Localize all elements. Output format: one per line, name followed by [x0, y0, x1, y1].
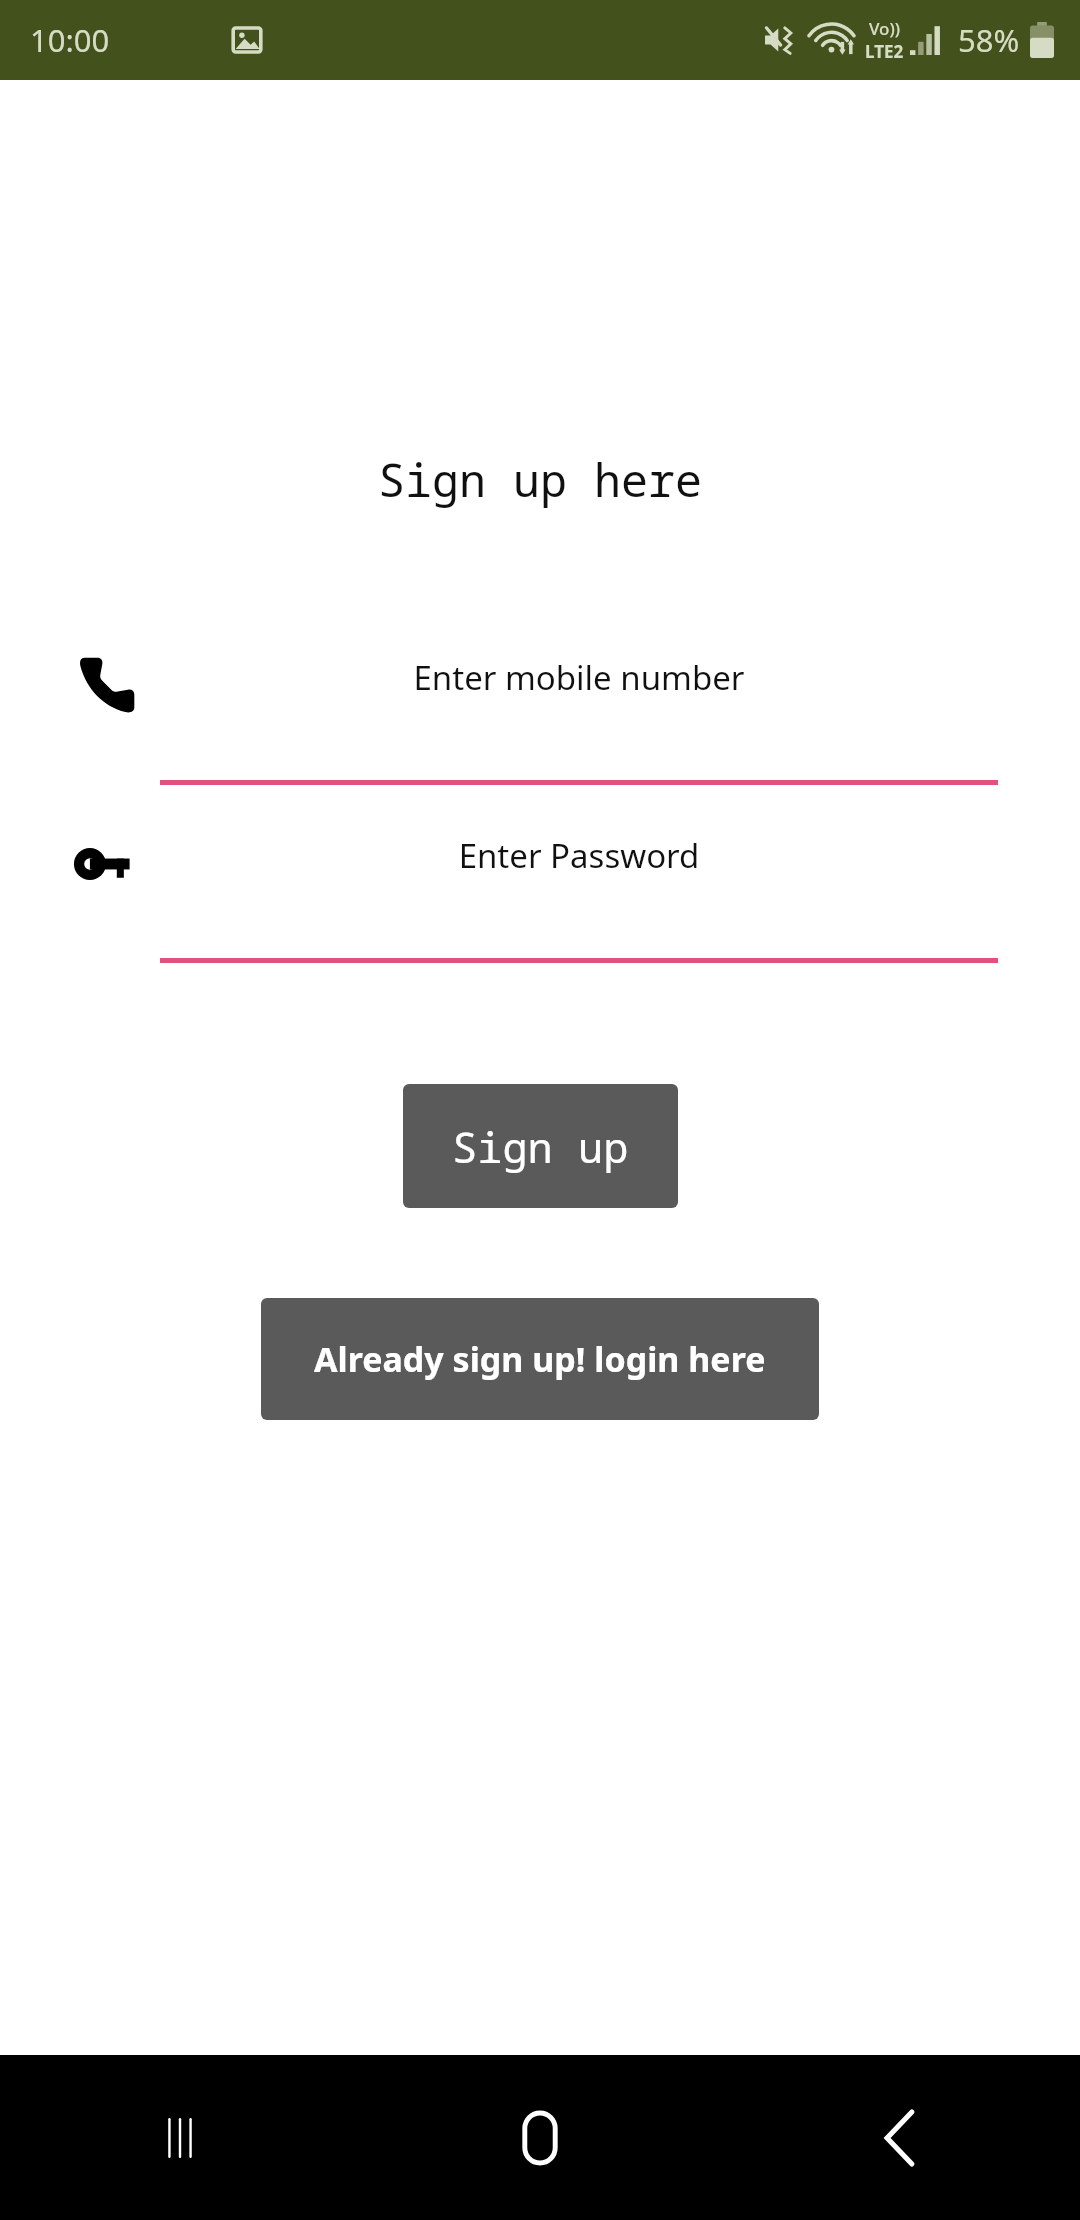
- button[interactable]: Home: [360, 2055, 720, 2220]
- staticText: Sign up here: [0, 449, 1080, 510]
- staticText: Enter Password: [160, 833, 998, 878]
- button[interactable]: Sign up: [403, 1084, 678, 1208]
- staticText: 10:00: [30, 19, 110, 61]
- button[interactable]: Back: [720, 2055, 1080, 2220]
- staticText: Sign up: [452, 1118, 629, 1175]
- button[interactable]: Already sign up! login here: [261, 1298, 819, 1420]
- staticText: Enter mobile number: [160, 655, 998, 700]
- staticText: LTE2: [865, 40, 904, 63]
- staticText: 58%: [958, 19, 1020, 61]
- staticText: Already sign up! login here: [314, 1336, 766, 1382]
- button[interactable]: Recent apps: [0, 2055, 360, 2220]
- staticText: Vo)): [869, 17, 901, 40]
